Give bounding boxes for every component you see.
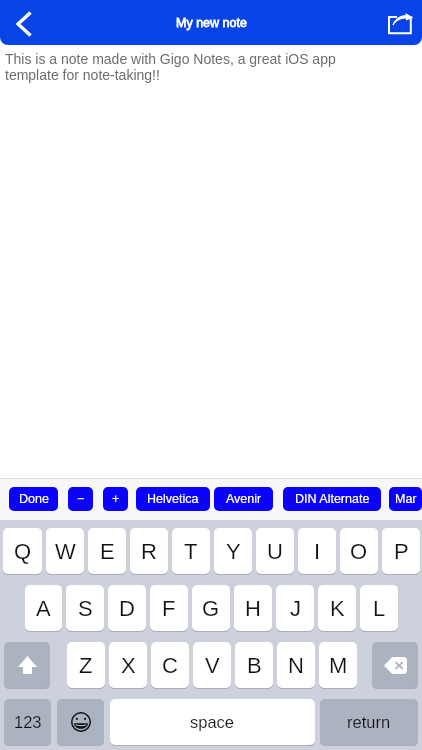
button[interactable]: 123 xyxy=(4,699,51,745)
button[interactable]: Backspace xyxy=(372,642,418,688)
button[interactable]: − xyxy=(68,487,93,511)
staticText: − xyxy=(77,492,85,506)
button[interactable]: V xyxy=(193,642,231,688)
staticText: A xyxy=(36,596,51,621)
staticText: G xyxy=(202,596,220,621)
button[interactable]: R xyxy=(130,528,168,574)
button[interactable]: return xyxy=(320,699,418,745)
button[interactable]: O xyxy=(340,528,378,574)
staticText: H xyxy=(245,596,261,621)
staticText: Avenir xyxy=(226,492,262,506)
staticText: L xyxy=(373,596,386,621)
button[interactable]: A xyxy=(25,585,62,631)
staticText: N xyxy=(288,653,304,678)
staticText: C xyxy=(162,653,178,678)
staticText: Q xyxy=(14,539,32,564)
button[interactable]: K xyxy=(318,585,356,631)
staticText: B xyxy=(247,653,262,678)
button[interactable]: U xyxy=(256,528,294,574)
staticText: Z xyxy=(79,653,93,678)
staticText: K xyxy=(330,596,345,621)
staticText: Mar xyxy=(395,492,417,506)
button[interactable]: T xyxy=(172,528,210,574)
button[interactable]: Q xyxy=(3,528,42,574)
staticText: J xyxy=(290,596,301,621)
staticText: W xyxy=(55,539,76,564)
button[interactable]: J xyxy=(276,585,314,631)
button[interactable]: N xyxy=(277,642,315,688)
button[interactable]: Emoji xyxy=(57,699,104,745)
button[interactable]: C xyxy=(151,642,189,688)
button[interactable]: B xyxy=(235,642,273,688)
staticText: 123 xyxy=(14,713,42,731)
button[interactable]: M xyxy=(319,642,357,688)
button[interactable]: Shift xyxy=(4,642,50,688)
button[interactable]: D xyxy=(108,585,146,631)
staticText: P xyxy=(394,539,409,564)
staticText: S xyxy=(78,596,93,621)
staticText: U xyxy=(267,539,283,564)
staticText: O xyxy=(350,539,368,564)
button[interactable]: Back xyxy=(0,0,46,45)
button[interactable]: E xyxy=(88,528,126,574)
staticText: X xyxy=(121,653,136,678)
button[interactable]: space xyxy=(110,699,315,745)
staticText: DIN Alternate xyxy=(295,492,370,506)
staticText: T xyxy=(184,539,198,564)
button[interactable]: X xyxy=(109,642,147,688)
button[interactable]: Z xyxy=(67,642,105,688)
button[interactable]: H xyxy=(234,585,272,631)
button[interactable]: P xyxy=(382,528,420,574)
button[interactable]: Y xyxy=(214,528,252,574)
staticText: return xyxy=(347,713,391,731)
button[interactable]: Share xyxy=(376,0,422,45)
staticText: + xyxy=(112,492,120,506)
button[interactable]: S xyxy=(66,585,104,631)
staticText: Helvetica xyxy=(147,492,199,506)
button[interactable]: L xyxy=(360,585,398,631)
staticText: Y xyxy=(226,539,241,564)
button[interactable]: G xyxy=(192,585,230,631)
staticText: F xyxy=(162,596,176,621)
button[interactable]: Avenir xyxy=(214,487,273,511)
staticText: Done xyxy=(19,492,49,506)
button[interactable]: Helvetica xyxy=(136,487,210,511)
button[interactable]: W xyxy=(46,528,84,574)
button[interactable]: I xyxy=(298,528,336,574)
staticText: R xyxy=(141,539,157,564)
button[interactable]: Done xyxy=(9,487,58,511)
staticText: My new note xyxy=(176,16,247,30)
staticText: I xyxy=(314,539,321,564)
button[interactable]: DIN Alternate xyxy=(283,487,381,511)
staticText: D xyxy=(119,596,135,621)
staticText: space xyxy=(190,713,235,731)
staticText: E xyxy=(100,539,115,564)
staticText: M xyxy=(329,653,348,678)
staticText: V xyxy=(205,653,220,678)
button[interactable]: Mar xyxy=(389,487,422,511)
staticText: This is a note made with Gigo Notes, a g… xyxy=(5,51,355,83)
button[interactable]: + xyxy=(103,487,128,511)
button[interactable]: F xyxy=(150,585,188,631)
